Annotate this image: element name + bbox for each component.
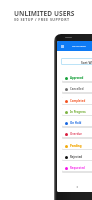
staticText: $0 SETUP / FREE SUPPORT <box>14 17 70 22</box>
staticText: Rejected <box>70 155 83 159</box>
button[interactable]: Back <box>76 186 78 188</box>
button[interactable]: Approved <box>62 74 92 81</box>
staticText: Completed <box>70 99 86 103</box>
staticText: Cancelled <box>70 87 84 91</box>
button[interactable]: On Hold <box>62 119 92 126</box>
staticText: Overdue <box>70 132 82 136</box>
staticText: Set WS Filters <box>72 45 86 48</box>
button[interactable]: Completed <box>62 97 92 104</box>
staticText: In Progress <box>70 110 86 114</box>
staticText: Sort WS <box>81 61 92 65</box>
staticText: Approved <box>70 76 84 80</box>
staticText: On Hold <box>70 121 82 125</box>
button[interactable]: Cancelled <box>62 85 92 92</box>
button[interactable]: Requested <box>62 164 92 171</box>
staticText: Requested <box>70 166 85 170</box>
button[interactable]: Sort WS <box>62 59 92 64</box>
staticText: UNLIMITED USERS <box>14 9 75 18</box>
staticText: Pending <box>70 144 82 148</box>
button[interactable]: Pending <box>62 142 92 149</box>
button[interactable]: Rejected <box>62 153 92 160</box>
button[interactable]: Overdue <box>62 130 92 137</box>
button[interactable]: In Progress <box>62 108 92 115</box>
